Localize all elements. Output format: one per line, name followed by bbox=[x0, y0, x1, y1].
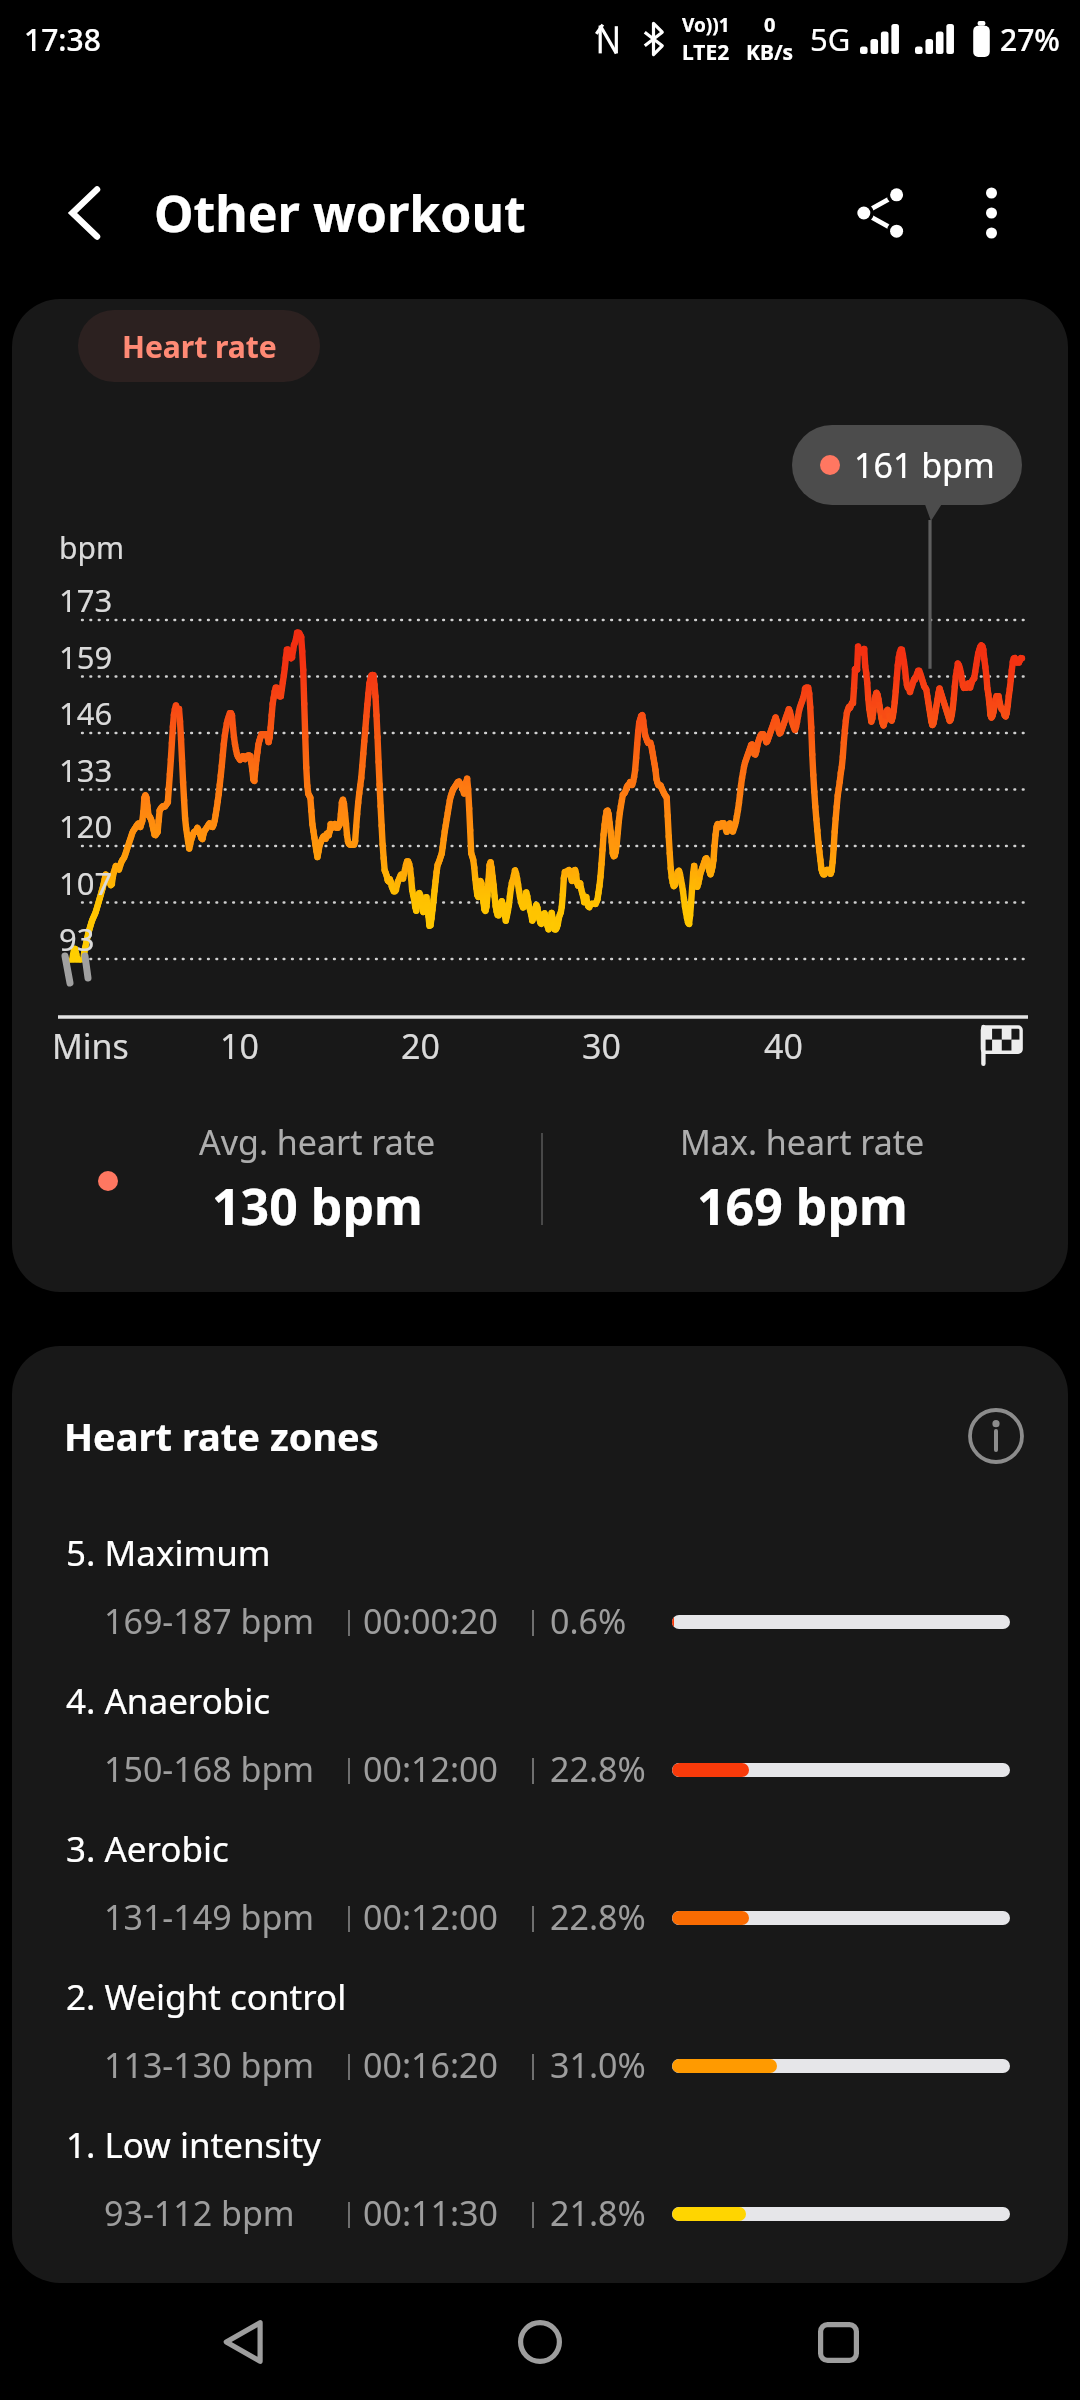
staticText: 93 bbox=[59, 918, 95, 960]
staticText: 10 bbox=[220, 1023, 259, 1069]
staticText: 3. Aerobic bbox=[66, 1825, 229, 1873]
staticText: 22.8% bbox=[550, 1746, 646, 1792]
staticText: Heart rate bbox=[122, 326, 277, 367]
button[interactable]: 1. Low intensity bbox=[12, 2118, 1068, 2266]
button[interactable]: Back bbox=[188, 2287, 298, 2397]
staticText: KB/s bbox=[746, 38, 794, 67]
staticText: Other workout bbox=[154, 179, 526, 247]
button[interactable]: Information bbox=[948, 1388, 1044, 1484]
button[interactable]: Home bbox=[485, 2287, 595, 2397]
staticText: 161 bpm bbox=[854, 442, 995, 488]
staticText: bpm bbox=[59, 527, 124, 568]
staticText: 0.6% bbox=[550, 1598, 627, 1644]
staticText: 159 bbox=[59, 636, 113, 678]
staticText: 169-187 bpm bbox=[104, 1598, 315, 1644]
staticText: Max. heart rate bbox=[680, 1119, 925, 1165]
staticText: 120 bbox=[59, 805, 113, 847]
staticText: 31.0% bbox=[550, 2042, 646, 2088]
button[interactable]: Navigate up bbox=[0, 143, 160, 283]
staticText: 107 bbox=[59, 862, 113, 904]
button[interactable]: Heart rate bbox=[78, 310, 320, 382]
staticText: 1. Low intensity bbox=[66, 2121, 321, 2169]
staticText: 22.8% bbox=[550, 1894, 646, 1940]
staticText: 146 bbox=[59, 692, 113, 734]
staticText: 27% bbox=[1000, 19, 1060, 60]
staticText: 30 bbox=[582, 1023, 621, 1069]
staticText: 21.8% bbox=[550, 2190, 646, 2236]
staticText: Vo))1 bbox=[682, 12, 730, 38]
staticText: Mins bbox=[52, 1023, 129, 1069]
button[interactable]: 5. Maximum bbox=[12, 1526, 1068, 1674]
button[interactable]: Share bbox=[826, 143, 936, 283]
staticText: 00:12:00 bbox=[363, 1746, 498, 1792]
staticText: 131-149 bpm bbox=[104, 1894, 315, 1940]
button[interactable]: 2. Weight control bbox=[12, 1970, 1068, 2118]
staticText: LTE2 bbox=[682, 38, 730, 67]
staticText: 00:16:20 bbox=[363, 2042, 498, 2088]
staticText: 130 bpm bbox=[212, 1172, 423, 1240]
button[interactable]: 4. Anaerobic bbox=[12, 1674, 1068, 1822]
button[interactable]: More options bbox=[936, 143, 1046, 283]
staticText: 00:12:00 bbox=[363, 1894, 498, 1940]
staticText: Heart rate zones bbox=[64, 1410, 379, 1462]
staticText: Avg. heart rate bbox=[199, 1119, 436, 1165]
staticText: 93-112 bpm bbox=[104, 2190, 295, 2236]
staticText: 40 bbox=[764, 1023, 803, 1069]
staticText: 00:11:30 bbox=[363, 2190, 498, 2236]
staticText: 113-130 bpm bbox=[104, 2042, 315, 2088]
staticText: 2. Weight control bbox=[66, 1973, 347, 2021]
staticText: 20 bbox=[401, 1023, 440, 1069]
staticText: 133 bbox=[59, 749, 113, 791]
staticText: 0 bbox=[764, 11, 776, 38]
button[interactable]: Recent apps bbox=[783, 2287, 893, 2397]
staticText: 5. Maximum bbox=[66, 1529, 271, 1577]
staticText: 00:00:20 bbox=[363, 1598, 498, 1644]
button[interactable]: 3. Aerobic bbox=[12, 1822, 1068, 1970]
staticText: 173 bbox=[59, 579, 113, 621]
staticText: 150-168 bpm bbox=[104, 1746, 315, 1792]
staticText: 169 bpm bbox=[697, 1172, 908, 1240]
staticText: 5G bbox=[810, 18, 851, 60]
staticText: 4. Anaerobic bbox=[66, 1677, 271, 1725]
staticText: 17:38 bbox=[24, 19, 101, 60]
